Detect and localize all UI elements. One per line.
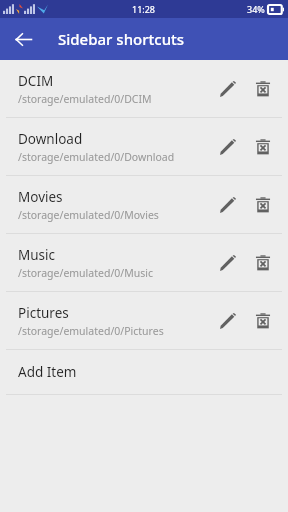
button[interactable]: Delete DCIM (246, 72, 280, 106)
button[interactable]: Music (0, 234, 288, 291)
button[interactable]: Delete Download (246, 130, 280, 164)
staticText: Add Item (18, 363, 77, 381)
button[interactable]: Pictures (0, 292, 288, 349)
staticText: Pictures (18, 304, 69, 322)
button[interactable]: Edit Movies (210, 188, 244, 222)
staticText: /storage/emulated/0/Download (18, 150, 175, 164)
button[interactable]: Edit Music (210, 246, 244, 280)
button[interactable]: Download (0, 118, 288, 175)
button[interactable]: Edit Download (210, 130, 244, 164)
button[interactable]: DCIM (0, 60, 288, 117)
button[interactable]: Delete Music (246, 246, 280, 280)
staticText: /storage/emulated/0/Pictures (18, 324, 164, 338)
staticText: Music (18, 246, 56, 264)
staticText: Sidebar shortcuts (58, 29, 185, 49)
button[interactable]: Edit DCIM (210, 72, 244, 106)
button[interactable]: Movies (0, 176, 288, 233)
button[interactable]: Edit Pictures (210, 304, 244, 338)
staticText: /storage/emulated/0/Movies (18, 208, 159, 222)
button[interactable]: Delete Movies (246, 188, 280, 222)
staticText: 34% (247, 3, 265, 15)
staticText: /storage/emulated/0/DCIM (18, 92, 152, 106)
button[interactable]: Add Item (0, 350, 288, 394)
staticText: Movies (18, 188, 63, 206)
button[interactable]: Delete Pictures (246, 304, 280, 338)
staticText: DCIM (18, 72, 54, 90)
button[interactable]: Back (6, 22, 40, 56)
staticText: /storage/emulated/0/Music (18, 266, 153, 280)
staticText: Download (18, 130, 83, 148)
staticText: 11:28 (132, 3, 156, 15)
